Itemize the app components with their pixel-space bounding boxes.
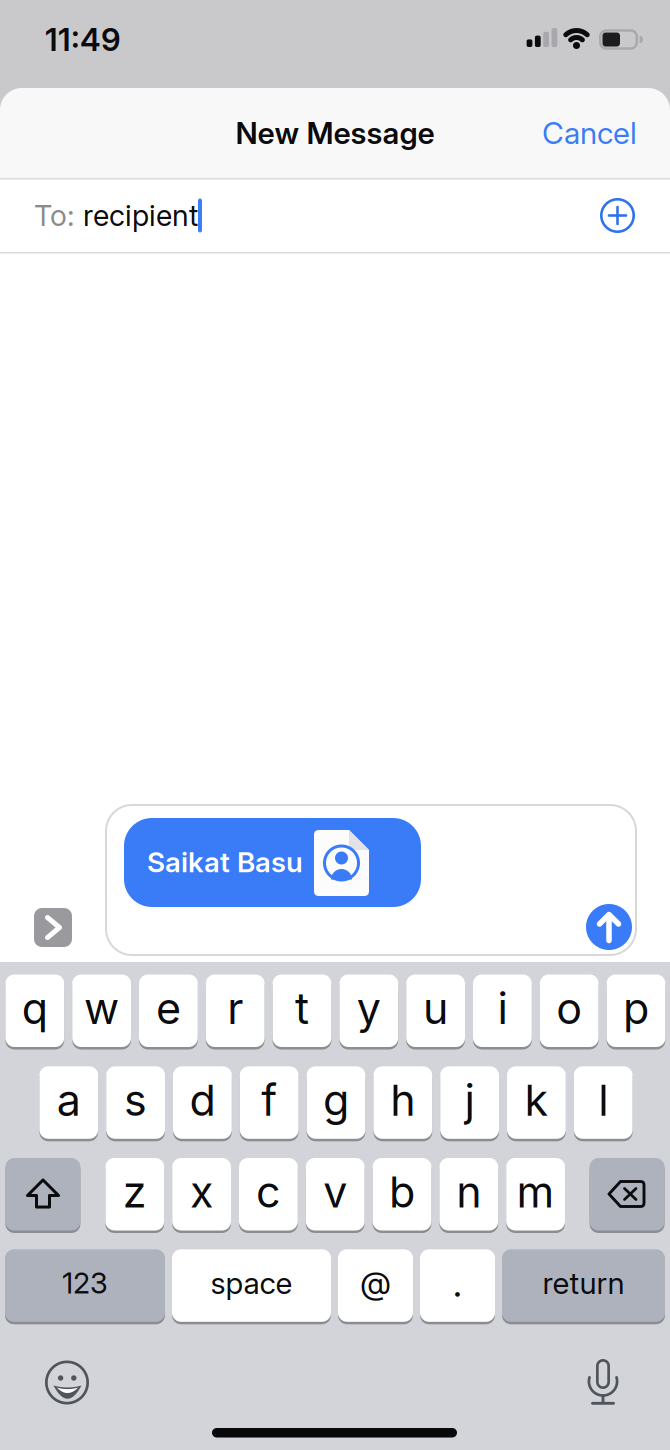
staticText: h xyxy=(390,1074,415,1126)
staticText: v xyxy=(323,1166,347,1218)
staticText: To: xyxy=(34,198,83,233)
staticText: z xyxy=(123,1166,147,1218)
staticText: l xyxy=(598,1074,608,1126)
staticText: 11:49 xyxy=(45,20,121,58)
staticText: f xyxy=(261,1074,277,1126)
staticText: k xyxy=(524,1074,548,1126)
staticText: return xyxy=(542,1265,624,1301)
staticText: b xyxy=(389,1166,415,1218)
staticText: space xyxy=(210,1265,292,1301)
staticText: p xyxy=(623,982,649,1034)
staticText: 123 xyxy=(62,1265,108,1301)
staticText: s xyxy=(124,1074,147,1126)
staticText: t xyxy=(295,982,309,1034)
staticText: g xyxy=(323,1074,349,1126)
staticText: . xyxy=(453,1260,462,1306)
staticText: w xyxy=(84,982,119,1034)
staticText: y xyxy=(357,982,381,1034)
staticText: u xyxy=(423,982,448,1034)
staticText: New Message xyxy=(235,115,434,151)
staticText: j xyxy=(465,1074,475,1126)
staticText: d xyxy=(189,1074,215,1126)
staticText: @ xyxy=(360,1264,391,1302)
staticText: Saikat Basu xyxy=(147,845,303,879)
staticText: m xyxy=(517,1166,555,1218)
staticText: x xyxy=(190,1166,213,1218)
staticText: q xyxy=(22,982,48,1034)
staticText: recipient xyxy=(83,198,198,233)
staticText: i xyxy=(497,982,507,1034)
staticText: a xyxy=(57,1074,81,1126)
staticText: Cancel xyxy=(542,115,637,151)
staticText: o xyxy=(556,982,582,1034)
staticText: r xyxy=(227,982,243,1034)
staticText: c xyxy=(256,1166,281,1218)
staticText: n xyxy=(456,1166,481,1218)
staticText: e xyxy=(156,982,181,1034)
